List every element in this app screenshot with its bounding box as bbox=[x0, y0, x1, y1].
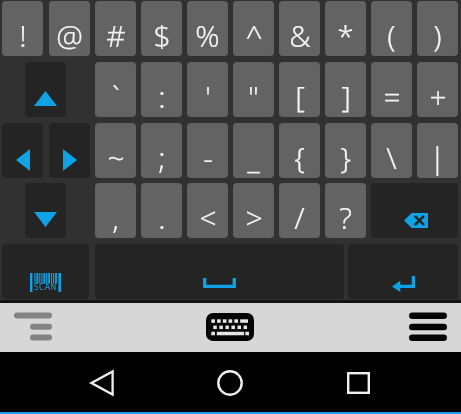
staticText: " bbox=[248, 76, 259, 117]
button[interactable]: " bbox=[233, 62, 274, 117]
staticText: > bbox=[245, 197, 263, 238]
staticText: : bbox=[158, 76, 166, 117]
button[interactable]: ` bbox=[95, 62, 136, 117]
button[interactable]: : bbox=[141, 62, 182, 117]
staticText: [ bbox=[295, 76, 305, 117]
staticText: ] bbox=[341, 76, 351, 117]
button[interactable]: | bbox=[417, 123, 458, 178]
button[interactable]: ( bbox=[371, 1, 412, 56]
button[interactable]: ~ bbox=[95, 123, 136, 178]
staticText: + bbox=[429, 76, 447, 117]
staticText: ) bbox=[433, 15, 442, 56]
staticText: ^ bbox=[245, 15, 263, 56]
staticText: ' bbox=[205, 76, 211, 117]
button[interactable]: / bbox=[279, 183, 320, 238]
staticText: @ bbox=[56, 15, 83, 56]
staticText: , bbox=[112, 197, 119, 238]
staticText: | bbox=[429, 137, 446, 178]
button[interactable]: } bbox=[325, 123, 366, 178]
button[interactable]: Back bbox=[74, 355, 130, 410]
button[interactable]: + bbox=[417, 62, 458, 117]
button[interactable]: ^ bbox=[233, 1, 274, 56]
button[interactable]: Cursor right bbox=[49, 123, 90, 178]
staticText: / bbox=[294, 197, 305, 238]
button[interactable]: ] bbox=[325, 62, 366, 117]
button[interactable]: % bbox=[187, 1, 228, 56]
staticText: # bbox=[106, 15, 126, 56]
button[interactable]: - bbox=[187, 123, 228, 178]
button[interactable]: ; bbox=[141, 123, 182, 178]
button[interactable]: ! bbox=[2, 1, 43, 56]
staticText: SCAN bbox=[34, 281, 58, 292]
staticText: ; bbox=[158, 137, 166, 178]
staticText: ? bbox=[339, 197, 352, 238]
button[interactable]: & bbox=[279, 1, 320, 56]
staticText: . bbox=[158, 197, 166, 238]
staticText: ( bbox=[387, 15, 396, 56]
button[interactable]: [ bbox=[279, 62, 320, 117]
staticText: { bbox=[294, 137, 305, 178]
staticText: % bbox=[195, 15, 220, 56]
button[interactable]: ' bbox=[187, 62, 228, 117]
button[interactable]: < bbox=[187, 183, 228, 238]
button[interactable]: $ bbox=[141, 1, 182, 56]
button[interactable]: Home bbox=[202, 355, 258, 410]
button[interactable]: Cursor left bbox=[2, 123, 43, 178]
button[interactable]: \ bbox=[371, 123, 412, 178]
button[interactable]: _ bbox=[233, 123, 274, 178]
button[interactable]: Change keyboard bbox=[203, 307, 257, 347]
staticText: ! bbox=[19, 15, 27, 56]
button[interactable]: Space bbox=[95, 244, 344, 299]
staticText: * bbox=[337, 15, 354, 56]
button[interactable]: { bbox=[279, 123, 320, 178]
button[interactable]: @ bbox=[49, 1, 90, 56]
button[interactable]: # bbox=[95, 1, 136, 56]
button[interactable]: , bbox=[95, 183, 136, 238]
staticText: < bbox=[199, 197, 217, 238]
button[interactable]: Delete bbox=[371, 183, 458, 238]
button[interactable]: Menu bbox=[403, 304, 453, 344]
button[interactable]: Overview bbox=[330, 355, 386, 410]
button[interactable]: = bbox=[371, 62, 412, 117]
staticText: & bbox=[289, 15, 311, 56]
staticText: _ bbox=[247, 137, 260, 178]
staticText: \ bbox=[386, 137, 397, 178]
staticText: = bbox=[383, 76, 401, 117]
staticText: } bbox=[340, 137, 351, 178]
button[interactable]: > bbox=[233, 183, 274, 238]
button[interactable]: . bbox=[141, 183, 182, 238]
button[interactable]: Cursor up bbox=[25, 62, 66, 117]
button[interactable]: ) bbox=[417, 1, 458, 56]
button[interactable]: Enter bbox=[348, 244, 458, 299]
staticText: ` bbox=[112, 76, 120, 117]
button[interactable]: Scan barcode bbox=[2, 244, 89, 299]
staticText: - bbox=[203, 137, 213, 178]
button[interactable]: ? bbox=[325, 183, 366, 238]
button[interactable]: * bbox=[325, 1, 366, 56]
staticText: ~ bbox=[107, 137, 125, 178]
button[interactable]: Cursor down bbox=[25, 183, 66, 238]
staticText: $ bbox=[153, 15, 171, 56]
button[interactable]: Keyboard settings bbox=[8, 304, 58, 344]
